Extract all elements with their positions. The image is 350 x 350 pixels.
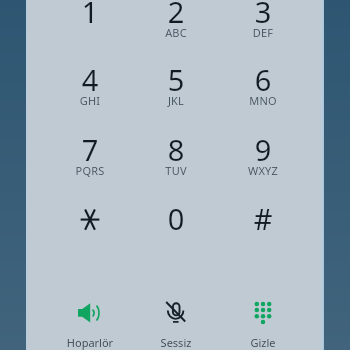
button[interactable]: Hide keypad <box>220 296 306 350</box>
staticText: 6 <box>220 60 306 99</box>
button[interactable]: 0 <box>133 198 219 258</box>
button[interactable]: 8 <box>133 129 219 189</box>
staticText: Sessiz <box>133 335 219 350</box>
staticText: PQRS <box>47 163 133 178</box>
button[interactable]: 4 <box>47 59 133 119</box>
staticText: 7 <box>47 130 133 169</box>
staticText: WXYZ <box>220 163 306 178</box>
staticText: 1 <box>47 0 133 31</box>
staticText: # <box>220 199 306 238</box>
staticText: 3 <box>220 0 306 31</box>
staticText: Gizle <box>220 335 306 350</box>
staticText: MNO <box>220 93 306 108</box>
button[interactable] <box>47 198 133 258</box>
staticText: 5 <box>133 60 219 99</box>
staticText: 8 <box>133 130 219 169</box>
staticText: 9 <box>220 130 306 169</box>
button[interactable]: 7 <box>47 129 133 189</box>
button[interactable]: 1 <box>47 0 133 51</box>
staticText: 4 <box>47 60 133 99</box>
staticText: 2 <box>133 0 219 31</box>
button[interactable]: Speaker <box>47 296 133 350</box>
staticText: Hoparlör <box>47 335 133 350</box>
button[interactable]: 6 <box>220 59 306 119</box>
button[interactable]: Mute <box>133 296 219 350</box>
button[interactable]: 3 <box>220 0 306 51</box>
button[interactable]: 2 <box>133 0 219 51</box>
staticText: 0 <box>133 199 219 238</box>
button[interactable]: 5 <box>133 59 219 119</box>
staticText: TUV <box>133 163 219 178</box>
staticText: GHI <box>47 93 133 108</box>
button[interactable]: 9 <box>220 129 306 189</box>
staticText: ABC <box>133 25 219 40</box>
staticText: JKL <box>133 93 219 108</box>
button[interactable]: # <box>220 198 306 258</box>
staticText: DEF <box>220 25 306 40</box>
